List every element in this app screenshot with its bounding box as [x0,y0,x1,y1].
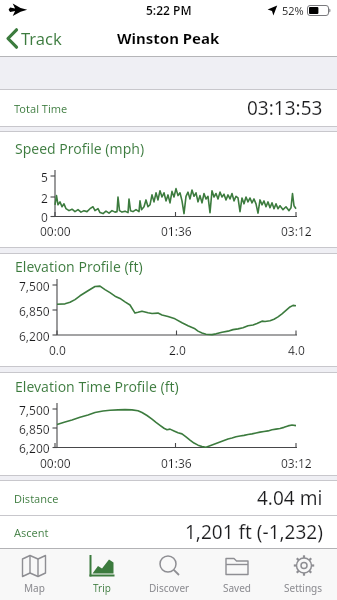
staticText: 00:00 [40,223,71,239]
staticText: Distance [14,491,59,506]
staticText: 5 [41,169,48,185]
staticText: 6,850 [19,421,50,437]
staticText: Winston Peak [117,28,220,48]
staticText: 01:36 [161,455,192,471]
staticText: Track [21,27,62,49]
staticText: 2.0 [169,342,186,358]
staticText: 4.0 [288,342,305,358]
staticText: 6,200 [19,440,50,456]
button[interactable]: Track [5,27,62,49]
staticText: 2 [41,190,48,206]
button[interactable]: Distance [14,481,323,515]
staticText: Ascent [14,525,49,540]
staticText: Discover [149,581,190,595]
button[interactable]: Discover [136,549,203,600]
staticText: Speed Profile (mph) [15,139,145,158]
button[interactable]: Settings [270,549,337,600]
staticText: 1,201 ft (-1,232) [185,519,323,545]
staticText: Total Time [14,101,68,116]
staticText: 5:22 PM [146,2,192,18]
staticText: Trip [93,581,111,595]
staticText: 4.04 mi [257,485,323,511]
staticText: Settings [284,581,323,595]
staticText: 7,500 [19,278,50,294]
staticText: Saved [223,581,251,595]
staticText: 52% [282,3,304,18]
button[interactable]: Map [0,549,68,600]
button[interactable]: Ascent [14,516,323,548]
button[interactable]: Total Time [14,90,323,126]
staticText: 01:36 [161,223,192,239]
staticText: 00:00 [40,455,71,471]
staticText: Map [24,581,45,595]
staticText: 7,500 [19,402,50,418]
staticText: Elevation Profile (ft) [15,257,143,276]
staticText: 6,850 [19,303,50,319]
button[interactable]: Saved [203,549,270,600]
button[interactable]: Trip [68,549,136,600]
staticText: 03:13:53 [247,95,323,121]
staticText: 6,200 [19,328,50,344]
staticText: Elevation Time Profile (ft) [15,377,179,396]
staticText: 0.0 [49,342,66,358]
staticText: 0 [41,209,48,225]
staticText: 03:12 [281,455,312,471]
staticText: 03:12 [281,223,312,239]
